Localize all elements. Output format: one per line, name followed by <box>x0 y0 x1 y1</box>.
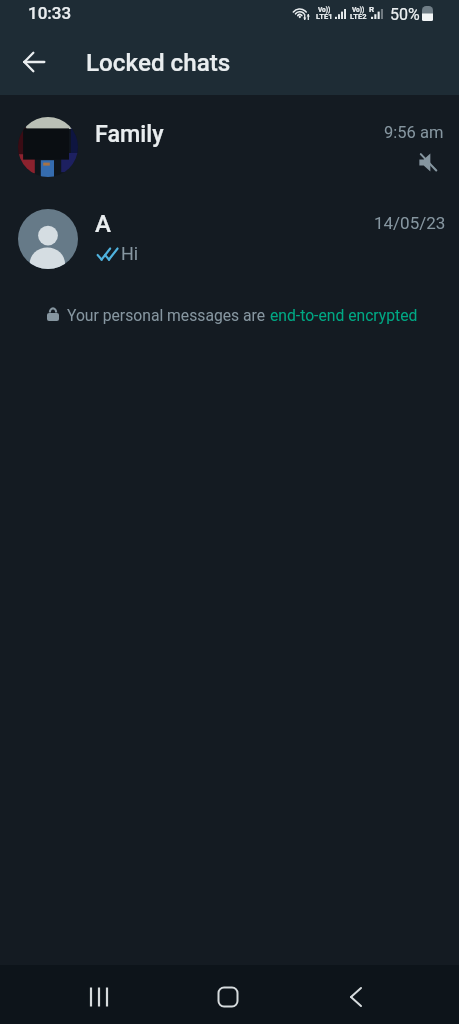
staticText: A <box>95 210 111 238</box>
staticText: Vo)) <box>352 6 365 14</box>
staticText: Locked chats <box>86 49 231 77</box>
button[interactable]: Recent apps <box>69 967 129 1024</box>
button[interactable]: Back <box>11 39 56 84</box>
staticText: Hi <box>121 243 139 264</box>
staticText: 10:33 <box>28 3 72 23</box>
staticText: R <box>369 5 375 14</box>
staticText: 14/05/23 <box>374 213 446 233</box>
staticText: Vo)) <box>318 6 331 14</box>
staticText: LTE2 <box>350 12 367 21</box>
button[interactable]: Home <box>198 967 258 1024</box>
staticText: end-to-end encrypted <box>270 306 418 324</box>
staticText: 9:56 am <box>384 123 444 142</box>
staticText: 50% <box>390 5 420 24</box>
staticText: LTE1 <box>316 12 333 21</box>
staticText: Family <box>95 120 164 147</box>
staticText: Your personal messages are <box>67 306 266 324</box>
button[interactable]: Back <box>326 967 386 1024</box>
button[interactable]: A <box>0 187 459 283</box>
button[interactable]: Family <box>0 95 459 187</box>
